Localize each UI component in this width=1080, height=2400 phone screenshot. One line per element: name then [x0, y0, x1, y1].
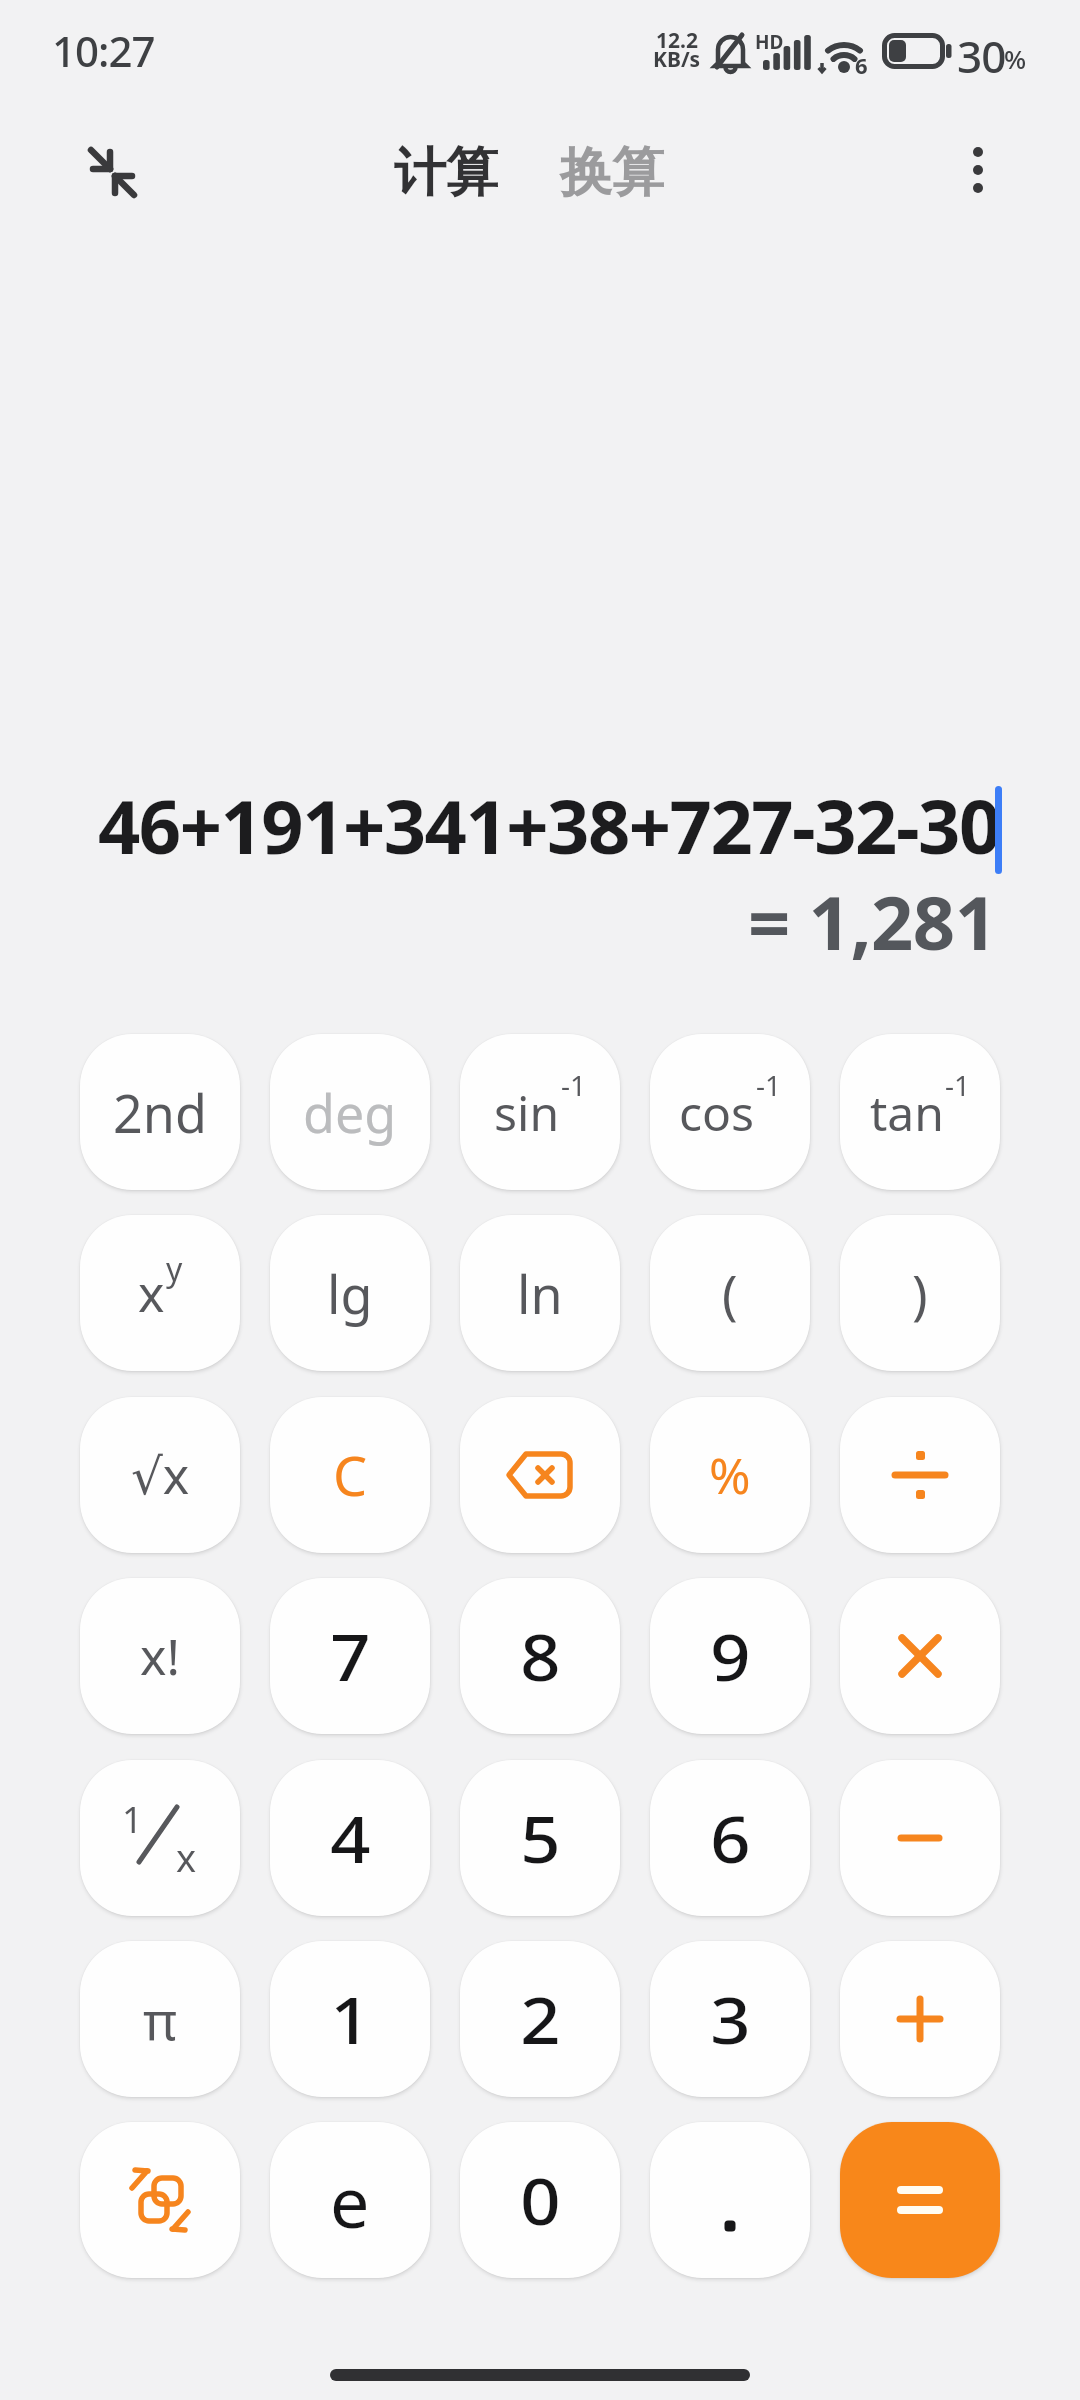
staticText: 2	[520, 1976, 561, 2063]
button[interactable]: C	[270, 1397, 430, 1553]
button[interactable]: cos	[650, 1034, 810, 1190]
staticText: 10:27	[52, 22, 155, 79]
button[interactable]: 5	[460, 1760, 620, 1916]
staticText: 2nd	[113, 1077, 207, 1148]
button[interactable]	[840, 1941, 1000, 2097]
button[interactable]: (	[650, 1215, 810, 1371]
button[interactable]: 6	[650, 1760, 810, 1916]
button[interactable]: 3	[650, 1941, 810, 2097]
button[interactable]	[840, 2122, 1000, 2278]
button[interactable]: 1	[80, 1760, 240, 1916]
button[interactable]	[76, 136, 148, 208]
staticText: sin	[494, 1080, 560, 1145]
staticText: HD	[755, 29, 784, 55]
staticText: 9	[710, 1613, 751, 1700]
button[interactable]: x	[80, 1215, 240, 1371]
staticText: deg	[303, 1077, 397, 1148]
button[interactable]: 换算	[560, 140, 664, 206]
staticText: π	[143, 1984, 177, 2055]
button[interactable]	[948, 140, 1008, 200]
button[interactable]: 0	[460, 2122, 620, 2278]
staticText: -1	[756, 1066, 782, 1104]
staticText: 8	[520, 1613, 561, 1700]
button[interactable]	[840, 1760, 1000, 1916]
staticText: = 1,281	[748, 871, 997, 972]
staticText: C	[333, 1438, 368, 1512]
button[interactable]: 7	[270, 1578, 430, 1734]
button[interactable]: x!	[80, 1578, 240, 1734]
staticText: lg	[327, 1258, 373, 1329]
staticText: x	[138, 1259, 165, 1327]
button[interactable]: %	[650, 1397, 810, 1553]
staticText: 6	[855, 50, 868, 80]
button[interactable]	[840, 1578, 1000, 1734]
staticText: x!	[140, 1622, 180, 1690]
staticText: 30	[957, 26, 1006, 86]
button[interactable]	[650, 2122, 810, 2278]
staticText: -1	[561, 1066, 587, 1104]
staticText: √x	[131, 1441, 190, 1509]
button[interactable]: 9	[650, 1578, 810, 1734]
button[interactable]: ln	[460, 1215, 620, 1371]
staticText: e	[330, 2153, 370, 2248]
staticText: 6	[710, 1795, 751, 1882]
button[interactable]: 4	[270, 1760, 430, 1916]
button[interactable]	[460, 1397, 620, 1553]
staticText: tan	[870, 1080, 944, 1145]
button[interactable]: e	[270, 2122, 430, 2278]
staticText: 7	[330, 1613, 371, 1700]
button[interactable]: 2nd	[80, 1034, 240, 1190]
button[interactable]: lg	[270, 1215, 430, 1371]
button[interactable]: π	[80, 1941, 240, 2097]
staticText: )	[912, 1258, 928, 1329]
staticText: %	[709, 1441, 751, 1509]
staticText: KB/s	[653, 45, 701, 74]
button[interactable]: )	[840, 1215, 1000, 1371]
staticText: x	[176, 1831, 197, 1883]
staticText: 3	[710, 1976, 751, 2063]
button[interactable]	[80, 2122, 240, 2278]
button[interactable]	[840, 1397, 1000, 1553]
button[interactable]: √x	[80, 1397, 240, 1553]
staticText: cos	[679, 1080, 755, 1145]
staticText: 46+191+341+38+727-32-30	[98, 775, 1000, 876]
staticText: 1	[122, 1795, 143, 1844]
staticText: ln	[517, 1258, 563, 1329]
staticText: y	[166, 1247, 183, 1291]
button[interactable]: 2	[460, 1941, 620, 2097]
button[interactable]: tan	[840, 1034, 1000, 1190]
staticText: 5	[520, 1795, 561, 1882]
staticText: (	[722, 1258, 738, 1329]
button[interactable]: sin	[460, 1034, 620, 1190]
button[interactable]: 8	[460, 1578, 620, 1734]
staticText: -1	[945, 1066, 971, 1104]
button[interactable]: 计算	[394, 140, 498, 206]
staticText: %	[1004, 41, 1027, 76]
button[interactable]: 1	[270, 1941, 430, 2097]
button[interactable]: deg	[270, 1034, 430, 1190]
staticText: 12.2	[656, 26, 698, 55]
staticText: 0	[520, 2157, 561, 2244]
staticText: 1	[330, 1976, 371, 2063]
staticText: 4	[330, 1795, 371, 1882]
